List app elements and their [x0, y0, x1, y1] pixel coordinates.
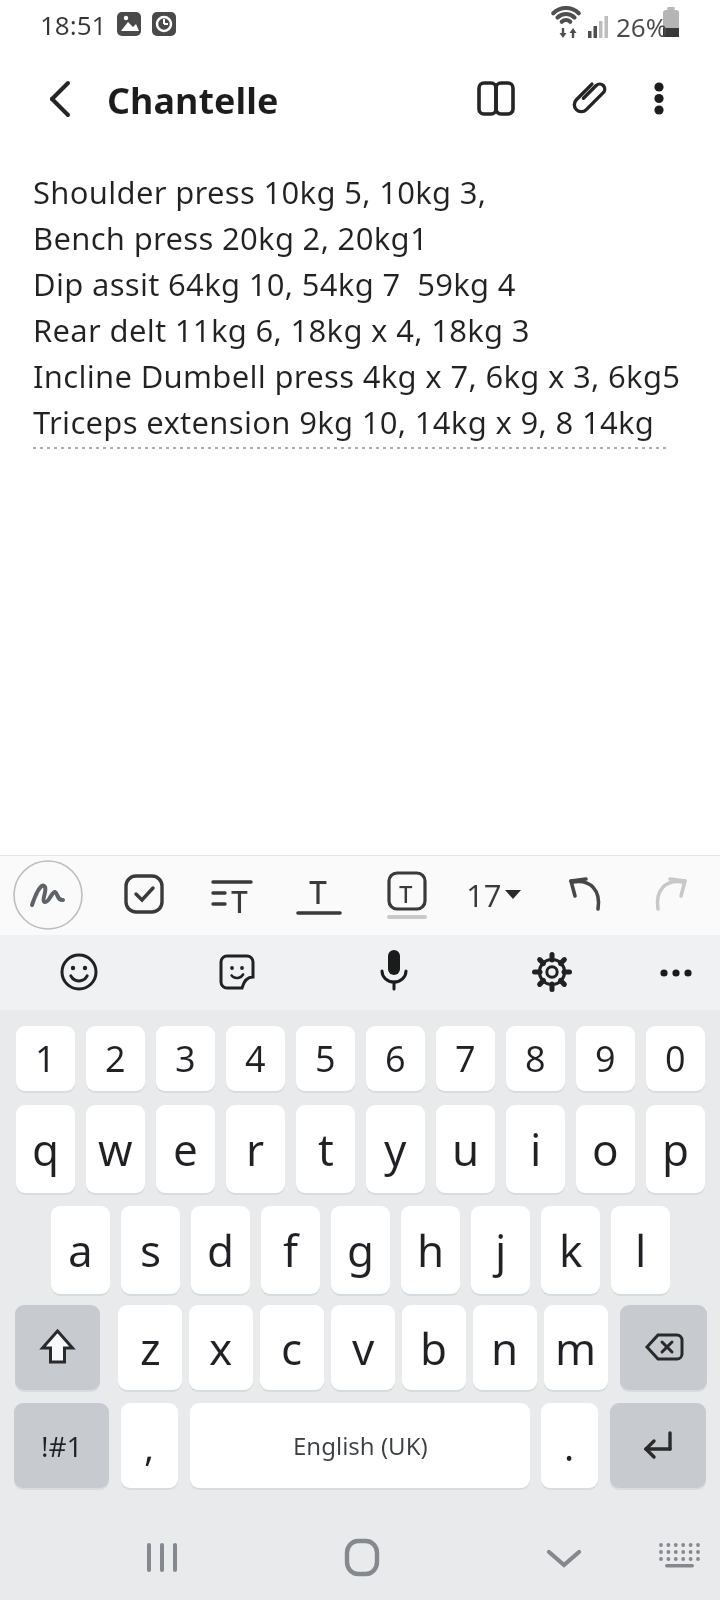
- button[interactable]: [620, 1305, 707, 1390]
- button[interactable]: e: [156, 1105, 215, 1193]
- button[interactable]: l: [611, 1206, 670, 1294]
- button[interactable]: [643, 865, 701, 923]
- button[interactable]: 1: [16, 1026, 75, 1091]
- staticText: 8: [525, 1034, 546, 1083]
- staticText: 3: [175, 1034, 196, 1083]
- button[interactable]: 9: [576, 1026, 635, 1091]
- staticText: p: [662, 1119, 690, 1179]
- button[interactable]: i: [506, 1105, 565, 1193]
- button[interactable]: u: [436, 1105, 495, 1193]
- button[interactable]: [209, 944, 265, 1000]
- staticText: 5: [315, 1034, 336, 1083]
- staticText: 6: [385, 1034, 406, 1083]
- button[interactable]: [648, 944, 704, 1000]
- staticText: 0: [665, 1034, 686, 1083]
- staticText: t: [318, 1119, 334, 1179]
- button[interactable]: [610, 1403, 706, 1488]
- button[interactable]: 3: [156, 1026, 215, 1091]
- button[interactable]: 7: [436, 1026, 495, 1091]
- staticText: s: [140, 1220, 162, 1280]
- staticText: 9: [595, 1034, 616, 1083]
- button[interactable]: [51, 944, 107, 1000]
- button[interactable]: [524, 944, 580, 1000]
- button[interactable]: English (UK): [190, 1403, 530, 1488]
- button[interactable]: n: [473, 1305, 537, 1390]
- staticText: .: [564, 1420, 575, 1472]
- staticText: w: [98, 1119, 133, 1179]
- button[interactable]: y: [366, 1105, 425, 1193]
- button[interactable]: 6: [366, 1026, 425, 1091]
- button[interactable]: h: [401, 1206, 460, 1294]
- button[interactable]: [555, 865, 613, 923]
- button[interactable]: ,: [121, 1403, 178, 1488]
- button[interactable]: w: [86, 1105, 145, 1193]
- button[interactable]: s: [121, 1206, 180, 1294]
- button[interactable]: r: [226, 1105, 285, 1193]
- button[interactable]: [30, 74, 86, 124]
- button[interactable]: [652, 1533, 708, 1581]
- staticText: i: [530, 1119, 542, 1179]
- button[interactable]: 2: [86, 1026, 145, 1091]
- staticText: !#1: [41, 1427, 83, 1465]
- button[interactable]: [559, 71, 615, 127]
- button[interactable]: p: [646, 1105, 705, 1193]
- staticText: r: [246, 1119, 265, 1179]
- staticText: e: [173, 1119, 198, 1179]
- button[interactable]: q: [16, 1105, 75, 1193]
- button[interactable]: t: [296, 1105, 355, 1193]
- staticText: u: [452, 1119, 480, 1179]
- button[interactable]: m: [544, 1305, 608, 1390]
- staticText: x: [209, 1318, 233, 1378]
- button[interactable]: b: [402, 1305, 466, 1390]
- staticText: Shoulder press 10kg 5, 10kg 3,: [33, 171, 487, 213]
- button[interactable]: [334, 1529, 390, 1585]
- button[interactable]: !#1: [14, 1403, 109, 1488]
- button[interactable]: 17: [458, 865, 530, 923]
- button[interactable]: [366, 942, 422, 998]
- button[interactable]: T: [378, 865, 436, 923]
- button[interactable]: [15, 1305, 100, 1390]
- staticText: v: [352, 1318, 375, 1378]
- button[interactable]: o: [576, 1105, 635, 1193]
- button[interactable]: a: [51, 1206, 110, 1294]
- button[interactable]: [134, 1529, 190, 1585]
- staticText: g: [347, 1220, 375, 1280]
- button[interactable]: [637, 71, 681, 127]
- staticText: T: [399, 877, 413, 910]
- staticText: a: [68, 1220, 93, 1280]
- staticText: h: [417, 1220, 445, 1280]
- staticText: n: [491, 1318, 519, 1378]
- button[interactable]: 0: [646, 1026, 705, 1091]
- button[interactable]: T: [290, 865, 348, 923]
- button[interactable]: k: [541, 1206, 600, 1294]
- staticText: English (UK): [293, 1429, 428, 1462]
- button[interactable]: x: [189, 1305, 253, 1390]
- button[interactable]: [468, 71, 524, 127]
- staticText: j: [495, 1220, 507, 1280]
- staticText: m: [555, 1318, 597, 1378]
- button[interactable]: j: [471, 1206, 530, 1294]
- staticText: y: [384, 1119, 407, 1179]
- staticText: 26%: [616, 9, 668, 44]
- button[interactable]: v: [331, 1305, 395, 1390]
- staticText: T: [309, 870, 327, 914]
- staticText: Incline Dumbell press 4kg x 7, 6kg x 3, …: [33, 355, 681, 397]
- button[interactable]: T: [203, 865, 261, 923]
- staticText: ,: [144, 1420, 155, 1472]
- button[interactable]: [12, 859, 84, 931]
- staticText: 7: [455, 1034, 476, 1083]
- button[interactable]: f: [261, 1206, 320, 1294]
- button[interactable]: 8: [506, 1026, 565, 1091]
- button[interactable]: [536, 1529, 592, 1585]
- button[interactable]: .: [541, 1403, 598, 1488]
- staticText: T: [231, 881, 248, 922]
- button[interactable]: 5: [296, 1026, 355, 1091]
- button[interactable]: g: [331, 1206, 390, 1294]
- button[interactable]: c: [260, 1305, 324, 1390]
- button[interactable]: 4: [226, 1026, 285, 1091]
- button[interactable]: [115, 865, 173, 923]
- staticText: z: [140, 1318, 161, 1378]
- button[interactable]: d: [191, 1206, 250, 1294]
- button[interactable]: z: [118, 1305, 182, 1390]
- staticText: Dip assit 64kg 10, 54kg 7 59kg 4: [33, 263, 516, 305]
